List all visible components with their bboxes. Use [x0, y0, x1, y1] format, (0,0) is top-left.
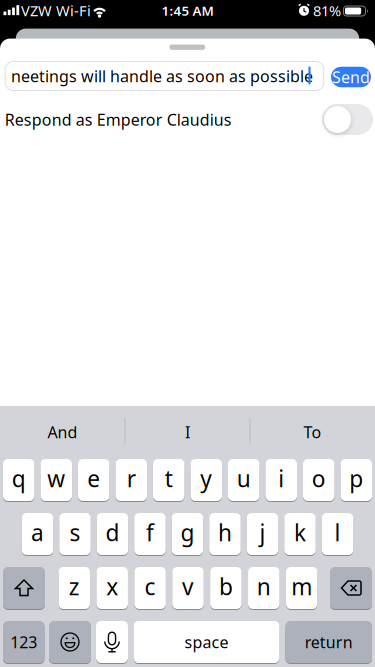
button[interactable]: j	[247, 513, 278, 555]
staticText: i	[278, 463, 284, 493]
button[interactable]: Send	[331, 67, 371, 87]
staticText: l	[334, 517, 340, 547]
staticText: h	[218, 517, 232, 547]
button[interactable]: x	[96, 567, 128, 609]
button[interactable]: Shift	[3, 567, 45, 609]
button[interactable]: Respond as Emperor Claudius	[322, 104, 373, 135]
button[interactable]: I	[127, 412, 247, 452]
button[interactable]: f	[134, 513, 166, 555]
staticText: 81%	[313, 1, 341, 20]
button[interactable]: z	[58, 567, 90, 609]
button[interactable]: u	[228, 459, 259, 501]
button[interactable]: y	[190, 459, 222, 501]
button[interactable]: n	[248, 567, 280, 609]
button[interactable]: t	[153, 459, 184, 501]
staticText: y	[200, 463, 212, 493]
button[interactable]: o	[303, 459, 334, 501]
staticText: b	[219, 571, 233, 601]
staticText: 1:45 AM	[161, 2, 213, 19]
button[interactable]: r	[115, 459, 147, 501]
staticText: f	[146, 517, 154, 547]
button[interactable]: s	[59, 513, 91, 555]
button[interactable]: h	[209, 513, 241, 555]
staticText: p	[349, 463, 363, 493]
staticText: g	[180, 517, 194, 547]
button[interactable]: Delete	[330, 567, 372, 609]
staticText: x	[106, 571, 118, 601]
button[interactable]: Numbers	[3, 621, 44, 663]
staticText: o	[312, 463, 326, 493]
staticText: s	[69, 517, 80, 547]
staticText: I	[185, 421, 190, 443]
button[interactable]: e	[78, 459, 109, 501]
staticText: q	[12, 463, 26, 493]
staticText: k	[294, 517, 306, 547]
button[interactable]: i	[265, 459, 297, 501]
button[interactable]: k	[284, 513, 316, 555]
staticText: u	[237, 463, 251, 493]
staticText: j	[259, 517, 265, 547]
button[interactable]: w	[40, 459, 72, 501]
staticText: Send	[332, 66, 370, 88]
staticText: v	[182, 571, 194, 601]
staticText: return	[305, 631, 353, 653]
button[interactable]: Dictation	[96, 621, 128, 663]
button[interactable]: p	[340, 459, 372, 501]
staticText: VZW Wi-Fi	[21, 1, 91, 20]
staticText: e	[87, 463, 100, 493]
button[interactable]: m	[286, 567, 317, 609]
button[interactable]: return	[285, 621, 372, 663]
staticText: n	[257, 571, 271, 601]
button[interactable]: q	[3, 459, 34, 501]
staticText: a	[31, 517, 44, 547]
staticText: t	[165, 463, 173, 493]
staticText: r	[127, 463, 136, 493]
button[interactable]: l	[322, 513, 353, 555]
button[interactable]: space	[133, 621, 279, 663]
button[interactable]: c	[134, 567, 166, 609]
staticText: To	[303, 421, 321, 443]
button[interactable]: d	[97, 513, 128, 555]
button[interactable]: g	[172, 513, 203, 555]
button[interactable]: v	[172, 567, 204, 609]
staticText: And	[47, 421, 77, 443]
button[interactable]: And	[2, 412, 122, 452]
button[interactable]: a	[22, 513, 53, 555]
button[interactable]: Message	[5, 61, 324, 91]
staticText: z	[69, 571, 80, 601]
button[interactable]: b	[210, 567, 242, 609]
button[interactable]: To	[252, 412, 372, 452]
staticText: neetings will handle as soon as possible	[11, 65, 313, 87]
button[interactable]: Emoji	[49, 621, 91, 663]
staticText: space	[184, 631, 228, 653]
staticText: w	[47, 463, 65, 493]
staticText: 123	[10, 631, 37, 653]
staticText: m	[291, 571, 312, 601]
staticText: d	[105, 517, 119, 547]
staticText: Respond as Emperor Claudius	[5, 109, 232, 130]
staticText: c	[145, 571, 156, 601]
